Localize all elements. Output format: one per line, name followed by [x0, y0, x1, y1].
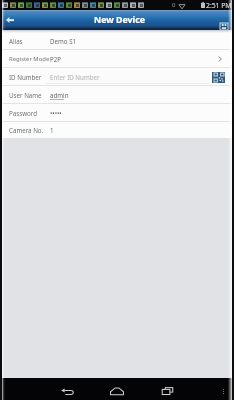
staticText: 1 — [50, 126, 54, 134]
button[interactable]: Recent apps — [157, 381, 177, 400]
staticText: 0 — [172, 1, 176, 9]
button[interactable]: Back — [0, 10, 20, 30]
staticText: Password — [9, 109, 37, 117]
staticText: 2:51 PM — [206, 1, 232, 10]
button[interactable]: Register Mode — [0, 50, 234, 68]
button[interactable]: ID Number — [0, 68, 234, 86]
staticText: Register Mode — [9, 55, 50, 63]
button[interactable]: Save — [220, 22, 228, 30]
staticText: Demo S1 — [50, 37, 77, 45]
staticText: admin — [50, 91, 69, 99]
staticText: P2P — [50, 55, 62, 63]
button[interactable]: User Name — [0, 86, 234, 104]
button[interactable]: More options — [217, 385, 229, 397]
button[interactable]: Password — [0, 104, 234, 122]
staticText: User Name — [9, 91, 42, 99]
staticText: ID Number — [9, 73, 42, 81]
button[interactable]: Alias — [0, 32, 234, 50]
staticText: New Device — [94, 14, 146, 26]
staticText: Camera No. — [9, 126, 44, 134]
button[interactable]: Back — [57, 381, 77, 400]
staticText: Enter ID Number — [50, 73, 100, 81]
staticText: ••••• — [50, 109, 62, 117]
staticText: Alias — [9, 37, 23, 45]
button[interactable]: Home — [107, 381, 127, 400]
button[interactable]: Camera No. — [0, 122, 234, 138]
button[interactable]: Scan QR code — [212, 72, 225, 83]
